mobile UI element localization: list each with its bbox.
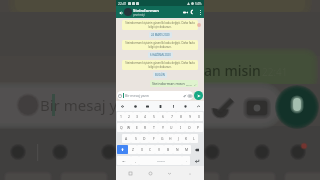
staticText: 4 bbox=[144, 114, 146, 119]
button[interactable]: C bbox=[146, 145, 155, 154]
button[interactable]: Settings bbox=[182, 103, 188, 109]
button[interactable]: Send bbox=[194, 91, 203, 100]
button[interactable]: Video call bbox=[181, 8, 189, 16]
button[interactable]: 5 bbox=[149, 112, 158, 121]
staticText: 6 HAZİRAN 2020 bbox=[150, 53, 171, 57]
button[interactable]: Q bbox=[117, 123, 125, 132]
button[interactable]: Back bbox=[117, 9, 124, 16]
button[interactable]: H bbox=[166, 134, 174, 143]
button[interactable]: N bbox=[173, 145, 182, 154]
staticText: G bbox=[161, 136, 164, 141]
staticText: C bbox=[149, 147, 152, 152]
staticText: Steindorman kişisinin güvenlik kodu deği… bbox=[124, 61, 196, 69]
staticText: an misin bbox=[204, 61, 261, 80]
staticText: U bbox=[170, 125, 173, 130]
staticText: A bbox=[125, 136, 128, 141]
button[interactable]: R bbox=[141, 123, 149, 132]
staticText: M bbox=[185, 147, 189, 152]
button[interactable]: 1 bbox=[117, 112, 125, 121]
button[interactable]: Backspace bbox=[191, 145, 203, 154]
staticText: . bbox=[186, 159, 187, 163]
button[interactable]: Recents bbox=[126, 169, 135, 178]
button[interactable]: X bbox=[137, 145, 146, 154]
button[interactable]: Enter bbox=[190, 156, 203, 165]
staticText: D bbox=[143, 136, 146, 141]
button[interactable]: Shift bbox=[117, 145, 128, 154]
staticText: 22:41 bbox=[118, 1, 127, 5]
staticText: B bbox=[167, 147, 170, 152]
button[interactable]: 2 bbox=[125, 112, 133, 121]
staticText: N bbox=[176, 147, 179, 152]
staticText: K bbox=[185, 136, 188, 141]
button[interactable]: 7 bbox=[167, 112, 176, 121]
staticText: 5 bbox=[153, 114, 155, 119]
button[interactable]: Hide keyboard bbox=[185, 169, 194, 178]
button[interactable]: More bbox=[195, 103, 201, 109]
button[interactable]: 8 bbox=[176, 112, 185, 121]
button[interactable]: G bbox=[158, 134, 166, 143]
staticText: Steindorman kişisinin güvenlik kodu deği… bbox=[124, 21, 196, 29]
staticText: 24 MAYIS 2020 bbox=[151, 33, 170, 37]
button[interactable]: D bbox=[140, 134, 149, 143]
button[interactable]: GIF bbox=[144, 103, 150, 109]
button[interactable]: Microphone bbox=[170, 103, 176, 109]
button[interactable]: Clipboard bbox=[157, 103, 163, 109]
staticText: , bbox=[135, 159, 136, 163]
button[interactable]: L bbox=[190, 134, 198, 143]
staticText: Q bbox=[120, 125, 123, 130]
staticText: Steindorman kişisinin güvenlik kodu deği… bbox=[124, 41, 196, 49]
button[interactable]: Back bbox=[165, 169, 174, 178]
button[interactable]: K bbox=[182, 134, 190, 143]
button[interactable]: Sticker bbox=[132, 103, 138, 109]
button[interactable]: Voice typing bbox=[119, 103, 125, 109]
staticText: O bbox=[188, 125, 191, 130]
button[interactable]: J bbox=[174, 134, 182, 143]
button[interactable]: 6 bbox=[158, 112, 167, 121]
button[interactable]: 9 bbox=[185, 112, 194, 121]
button[interactable]: I bbox=[176, 123, 185, 132]
staticText: P bbox=[197, 125, 200, 130]
button[interactable]: , bbox=[131, 156, 139, 165]
staticText: Steindorman mısın bbox=[152, 81, 185, 86]
button[interactable]: U bbox=[167, 123, 176, 132]
staticText: BUGÜN bbox=[155, 73, 165, 77]
button[interactable]: A bbox=[122, 134, 131, 143]
staticText: 0 bbox=[198, 114, 200, 119]
staticText: 7 bbox=[171, 114, 173, 119]
button[interactable]: 4 bbox=[141, 112, 149, 121]
staticText: Bir mesaj y bbox=[40, 95, 118, 115]
staticText: T bbox=[153, 125, 155, 130]
staticText: F bbox=[153, 136, 155, 141]
button[interactable]: E bbox=[133, 123, 141, 132]
staticText: 3 bbox=[136, 114, 138, 119]
button[interactable]: 0 bbox=[194, 112, 203, 121]
button[interactable]: P bbox=[194, 123, 203, 132]
button[interactable]: More options bbox=[197, 9, 203, 15]
button[interactable]: F bbox=[149, 134, 158, 143]
button[interactable]: B bbox=[164, 145, 173, 154]
staticText: I bbox=[180, 125, 182, 130]
button[interactable]: Call bbox=[189, 8, 197, 16]
button[interactable]: M bbox=[182, 145, 191, 154]
staticText: 9 bbox=[189, 114, 191, 119]
button[interactable]: Y bbox=[158, 123, 167, 132]
staticText: 8 bbox=[180, 114, 182, 119]
button[interactable]: T bbox=[149, 123, 158, 132]
staticText: W bbox=[127, 125, 131, 130]
button[interactable]: S bbox=[131, 134, 140, 143]
button[interactable]: Z bbox=[128, 145, 137, 154]
button[interactable]: O bbox=[185, 123, 194, 132]
button[interactable]: V bbox=[155, 145, 164, 154]
button[interactable]: Türkçe bbox=[139, 156, 182, 165]
staticText: Bir mesaj yazın bbox=[125, 93, 149, 98]
button[interactable]: W bbox=[125, 123, 133, 132]
button[interactable]: Home bbox=[146, 169, 155, 178]
button[interactable]: !#1 bbox=[117, 156, 131, 165]
button[interactable]: 3 bbox=[133, 112, 141, 121]
staticText: 6 bbox=[162, 114, 164, 119]
staticText: çevrimiçi bbox=[133, 13, 145, 17]
staticText: Y bbox=[162, 125, 164, 130]
staticText: V bbox=[158, 147, 161, 152]
